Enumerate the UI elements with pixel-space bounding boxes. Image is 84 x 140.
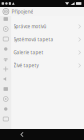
staticText: Systémová tapeta (13, 36, 53, 43)
button[interactable]: Themes (0, 84, 11, 94)
button[interactable]: Screen (0, 34, 11, 44)
button[interactable]: Galerie tapet (11, 46, 84, 59)
button[interactable]: Back (16, 129, 28, 140)
button[interactable]: Připojené (0, 7, 84, 16)
staticText: Správce motivů (13, 23, 46, 30)
button[interactable]: Sound (0, 44, 11, 54)
button[interactable]: Volume (0, 74, 11, 84)
button[interactable]: Živé tapety (11, 59, 84, 72)
button[interactable]: Display (0, 24, 11, 34)
button[interactable]: About (0, 94, 11, 104)
button[interactable]: Wireless (0, 54, 11, 64)
button[interactable]: Settings (0, 114, 11, 124)
button[interactable]: Apps (0, 14, 11, 24)
staticText: Připojené (11, 8, 33, 15)
button[interactable]: More (0, 104, 11, 114)
staticText: Galerie tapet (13, 49, 43, 56)
staticText: Živé tapety (13, 62, 38, 69)
button[interactable]: Správce motivů (11, 20, 84, 33)
button[interactable]: Systémová tapeta (11, 33, 84, 46)
button[interactable]: Add (0, 64, 11, 74)
